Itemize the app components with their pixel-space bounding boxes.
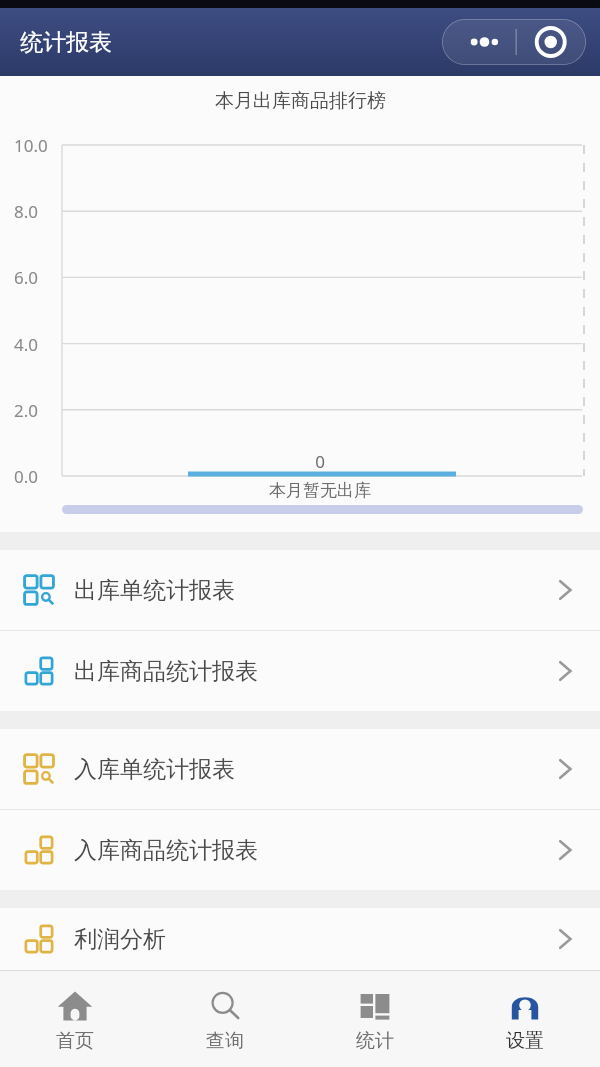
button[interactable]: 利润分析 <box>0 908 600 970</box>
staticText: 设置 <box>506 1029 544 1053</box>
staticText: 6.0 <box>14 266 39 289</box>
staticText: 本月暂无出库 <box>58 480 582 501</box>
button[interactable]: 入库商品统计报表 <box>0 810 600 890</box>
staticText: 0.0 <box>14 465 39 488</box>
button[interactable]: Search <box>150 971 300 1067</box>
staticText: 利润分析 <box>74 925 166 954</box>
staticText: 8.0 <box>14 200 39 223</box>
button[interactable]: 入库单统计报表 <box>0 729 600 809</box>
button[interactable]: 出库单统计报表 <box>0 550 600 630</box>
staticText: 入库单统计报表 <box>74 755 235 784</box>
staticText: 出库商品统计报表 <box>74 657 258 686</box>
button[interactable]: Settings <box>450 971 600 1067</box>
button[interactable]: 出库商品统计报表 <box>0 631 600 711</box>
staticText: 统计报表 <box>20 28 112 57</box>
staticText: 2.0 <box>14 399 39 422</box>
button[interactable]: Statistics <box>300 971 450 1067</box>
staticText: 本月出库商品排行榜 <box>215 89 386 113</box>
button[interactable]: More options and close <box>442 19 586 65</box>
staticText: 4.0 <box>14 333 39 356</box>
staticText: 0 <box>58 450 582 473</box>
staticText: 查询 <box>206 1029 244 1053</box>
button[interactable]: Home <box>0 971 150 1067</box>
staticText: 10.0 <box>14 134 48 157</box>
staticText: 统计 <box>356 1029 394 1053</box>
staticText: 出库单统计报表 <box>74 576 235 605</box>
staticText: 入库商品统计报表 <box>74 836 258 865</box>
staticText: 首页 <box>56 1029 94 1053</box>
